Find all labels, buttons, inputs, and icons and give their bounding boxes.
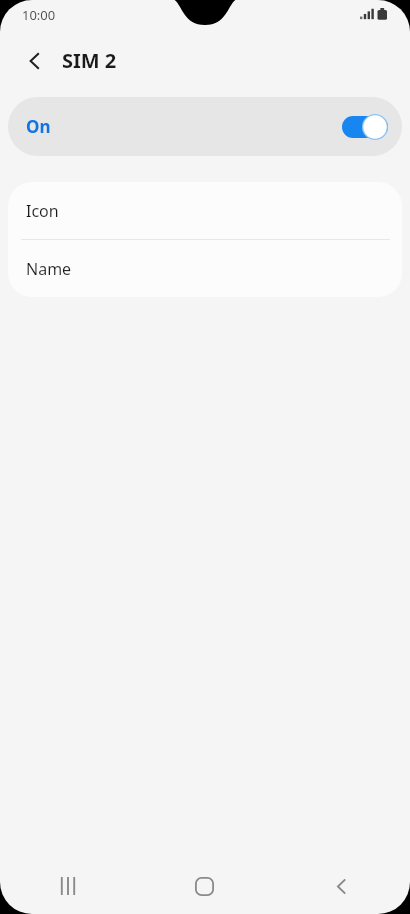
- button[interactable]: Back: [15, 41, 55, 81]
- staticText: Name: [26, 258, 72, 280]
- staticText: On: [26, 115, 51, 138]
- staticText: Icon: [26, 200, 59, 222]
- button[interactable]: Name: [8, 240, 402, 297]
- staticText: SIM 2: [62, 47, 117, 74]
- button[interactable]: Back: [273, 858, 410, 914]
- button[interactable]: Home: [136, 858, 273, 914]
- staticText: 10:00: [22, 6, 56, 24]
- button[interactable]: Icon: [8, 182, 402, 239]
- button[interactable]: On: [8, 97, 402, 156]
- button[interactable]: Recent apps: [0, 858, 136, 914]
